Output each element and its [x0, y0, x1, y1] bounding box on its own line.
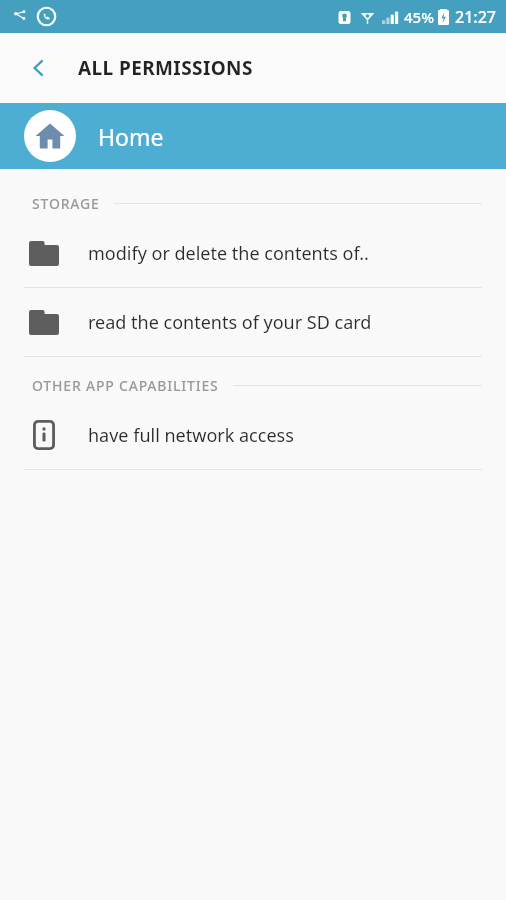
staticText: ALL PERMISSIONS: [78, 55, 253, 81]
staticText: have full network access: [88, 423, 294, 448]
staticText: 21:27: [455, 6, 496, 28]
staticText: modify or delete the contents of..: [88, 241, 369, 266]
staticText: OTHER APP CAPABILITIES: [32, 376, 219, 395]
staticText: 45%: [404, 7, 434, 27]
staticText: STORAGE: [32, 194, 100, 213]
staticText: read the contents of your SD card: [88, 310, 372, 335]
button[interactable]: have full network access: [0, 401, 506, 469]
button[interactable]: Back: [16, 45, 62, 91]
button[interactable]: Home: [0, 103, 506, 169]
staticText: Home: [98, 121, 164, 152]
button[interactable]: read the contents of your SD card: [0, 288, 506, 356]
button[interactable]: modify or delete the contents of..: [0, 219, 506, 287]
